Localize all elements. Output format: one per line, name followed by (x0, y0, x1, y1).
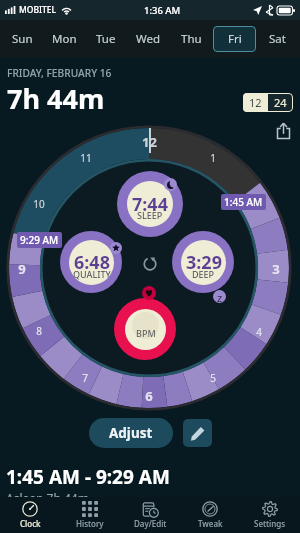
staticText: 10 (33, 197, 45, 211)
button[interactable]: Settings (240, 497, 300, 533)
staticText: History (76, 518, 104, 529)
staticText: Mon (52, 31, 77, 47)
button[interactable]: Tue (85, 26, 127, 52)
button[interactable]: 6:48 (60, 231, 122, 293)
button[interactable]: Thu (170, 26, 213, 52)
staticText: 5 (210, 371, 216, 385)
staticText: 24 (274, 95, 287, 110)
staticText: Asleep 7h 44m (6, 490, 89, 506)
button[interactable]: 12 (243, 93, 268, 112)
staticText: 6:48 (74, 250, 110, 275)
staticText: z (217, 290, 223, 303)
staticText: Settings (254, 518, 286, 529)
button[interactable]: 7:44 (117, 171, 183, 237)
staticText: Tweak (198, 518, 223, 529)
button[interactable]: Sun (1, 26, 43, 52)
button[interactable]: 3:29 (172, 231, 234, 293)
staticText: Tue (96, 31, 116, 47)
button[interactable]: Share (270, 117, 296, 143)
button[interactable]: Adjust (89, 418, 173, 448)
button[interactable]: 24 (268, 93, 293, 112)
button[interactable]: Wed (127, 26, 170, 52)
staticText: 12 (142, 133, 157, 149)
staticText: Fri (228, 31, 242, 47)
button[interactable]: History (60, 497, 120, 533)
staticText: 7h 44m (7, 80, 105, 117)
staticText: FRIDAY, FEBRUARY 16 (7, 66, 112, 80)
staticText: 3:29 (186, 250, 222, 275)
staticText: 1:45 AM (224, 195, 263, 209)
button[interactable]: Sat (256, 26, 299, 52)
staticText: MOBITEL (19, 4, 57, 16)
button[interactable]: Refresh (141, 255, 159, 273)
staticText: 8 (36, 324, 42, 338)
button[interactable]: Tweak (180, 497, 240, 533)
staticText: 4 (256, 325, 262, 339)
button[interactable]: Clock (0, 497, 60, 533)
button[interactable]: Day/Edit (120, 497, 180, 533)
staticText: 1:45 AM - 9:29 AM (6, 464, 170, 490)
staticText: 9:29 AM (20, 233, 59, 247)
staticText: 9 (18, 260, 26, 276)
staticText: Sun (12, 31, 33, 47)
staticText: Wed (136, 31, 161, 47)
button[interactable]: Edit (183, 419, 212, 447)
staticText: SLEEP (137, 209, 163, 221)
staticText: 7:44 (132, 192, 168, 217)
staticText: DEEP (192, 268, 215, 280)
staticText: BPM (136, 327, 156, 339)
staticText: 7 (82, 371, 88, 385)
staticText: Adjust (109, 424, 153, 442)
staticText: 3 (272, 260, 280, 276)
staticText: QUALITY (73, 268, 111, 280)
staticText: Day/Edit (134, 518, 167, 529)
button[interactable]: BPM (114, 298, 176, 360)
staticText: Thu (181, 31, 202, 47)
staticText: 12 (249, 95, 262, 110)
staticText: 11 (80, 151, 92, 165)
staticText: 1 (210, 151, 216, 165)
button[interactable]: Mon (43, 26, 85, 52)
staticText: 6 (145, 387, 153, 403)
staticText: Sat (269, 31, 286, 47)
button[interactable]: Fri (213, 26, 256, 52)
staticText: 2 (256, 198, 262, 212)
staticText: Clock (20, 518, 41, 529)
staticText: 1:36 AM (144, 4, 181, 17)
